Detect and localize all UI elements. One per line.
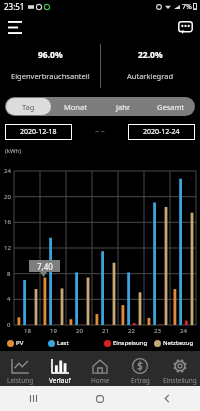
button[interactable]: Last — [44, 339, 100, 347]
staticText: 12 — [4, 244, 11, 252]
button[interactable]: 96.0% — [0, 40, 100, 92]
button[interactable]: 22.0% — [100, 40, 200, 92]
button[interactable]: Back — [133, 386, 200, 411]
staticText: Last — [57, 339, 69, 347]
staticText: Monat — [64, 102, 87, 112]
button[interactable]: Netzbezug — [150, 339, 200, 347]
button[interactable]: Ertrag — [120, 352, 160, 385]
staticText: 4 — [7, 295, 11, 303]
staticText: 0 — [7, 321, 11, 329]
staticText: 24 — [4, 167, 11, 175]
button[interactable]: Verlauf — [40, 353, 80, 385]
staticText: 20 — [4, 193, 11, 201]
staticText: 21 — [102, 327, 109, 335]
staticText: 96.0% — [38, 49, 63, 61]
staticText: 8 — [7, 270, 11, 278]
button[interactable]: Einspeisung — [100, 339, 150, 347]
staticText: 20 — [76, 327, 83, 335]
staticText: Eigenverbrauchsanteil — [11, 71, 90, 81]
button[interactable]: Home — [80, 353, 120, 385]
staticText: Autarkiegrad — [127, 71, 173, 81]
staticText: Home — [91, 376, 110, 385]
staticText: (kWh) — [5, 147, 22, 155]
staticText: 16 — [4, 218, 11, 226]
staticText: 19 — [50, 327, 57, 335]
staticText: 23 — [154, 327, 161, 335]
staticText: 2020-12-18 — [20, 127, 57, 137]
staticText: 22.0% — [138, 49, 163, 61]
staticText: 7% — [182, 2, 192, 12]
staticText: 2020-12-24 — [143, 127, 180, 137]
button[interactable]: Tag — [6, 98, 51, 115]
staticText: 23:51 — [4, 1, 25, 12]
staticText: Jahr — [116, 102, 130, 112]
button[interactable]: Messages — [174, 16, 196, 38]
staticText: 22 — [128, 327, 135, 335]
staticText: Leistung — [7, 376, 34, 385]
staticText: Einstellung — [163, 376, 197, 385]
staticText: PV — [16, 339, 24, 347]
staticText: ~ ~ — [95, 127, 105, 137]
button[interactable]: Monat — [53, 98, 98, 115]
button[interactable]: Menu — [4, 16, 26, 38]
button[interactable]: 2020-12-18 — [5, 124, 72, 140]
button[interactable]: Einstellung — [160, 352, 200, 385]
staticText: 24 — [180, 327, 187, 335]
staticText: Netzbezug — [163, 339, 194, 347]
staticText: 7,40 — [37, 261, 53, 272]
button[interactable]: Leistung — [0, 353, 40, 385]
button[interactable]: Recent apps — [0, 386, 66, 411]
button[interactable]: Home — [66, 386, 133, 411]
button[interactable]: 2020-12-24 — [128, 124, 195, 140]
staticText: 18 — [24, 327, 31, 335]
staticText: Gesamt — [157, 102, 185, 112]
button[interactable]: Jahr — [100, 98, 146, 115]
staticText: Tag — [22, 102, 35, 112]
staticText: Einspeisung — [113, 339, 148, 347]
staticText: Verlauf — [49, 376, 71, 385]
button[interactable]: PV — [0, 339, 44, 347]
staticText: Ertrag — [131, 376, 150, 385]
button[interactable]: Gesamt — [148, 98, 194, 115]
